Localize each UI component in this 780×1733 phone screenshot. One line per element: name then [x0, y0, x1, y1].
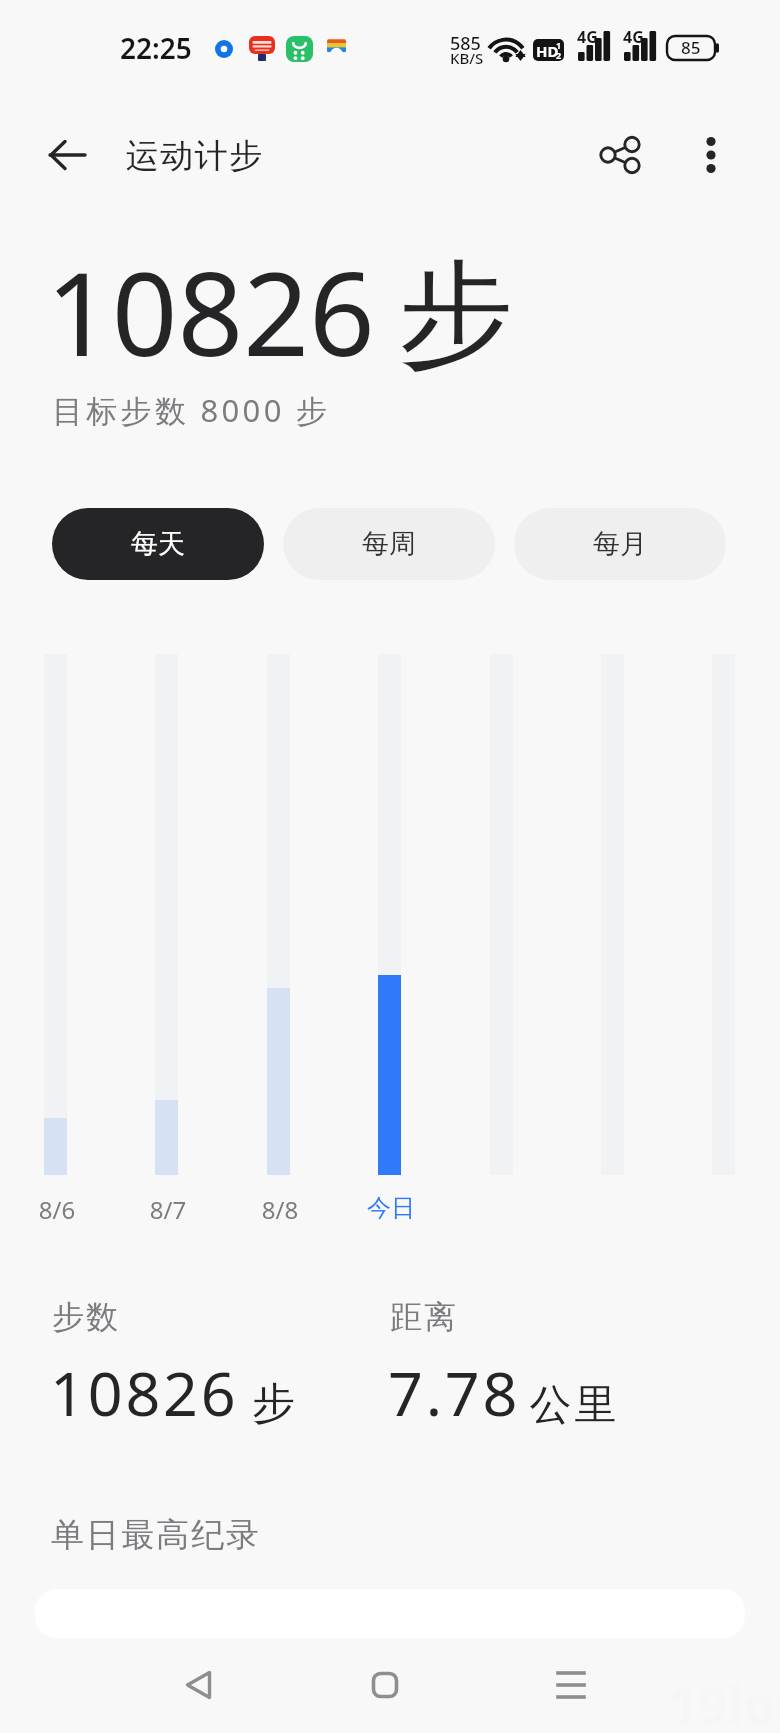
- staticText: 1: [556, 39, 562, 51]
- button[interactable]: Day column: [44, 654, 67, 1175]
- staticText: HD: [536, 41, 559, 61]
- staticText: 步: [398, 243, 513, 388]
- staticText: 目标步数 8000 步: [52, 389, 331, 431]
- button[interactable]: 每天: [52, 508, 264, 580]
- staticText: 8/6: [17, 1193, 97, 1226]
- staticText: 85: [681, 36, 701, 59]
- staticText: 4G: [577, 26, 598, 48]
- staticText: 步: [252, 1377, 295, 1431]
- button[interactable]: Back: [34, 127, 102, 195]
- button[interactable]: More options: [687, 127, 735, 175]
- button[interactable]: Home: [345, 1645, 425, 1725]
- button[interactable]: Recent apps: [531, 1645, 611, 1725]
- staticText: 10826: [46, 233, 375, 390]
- staticText: KB/S: [450, 48, 484, 68]
- button[interactable]: Day column: [155, 654, 178, 1175]
- staticText: 8/8: [240, 1193, 320, 1226]
- staticText: 每周: [362, 527, 416, 561]
- staticText: 每天: [131, 527, 185, 561]
- staticText: 运动计步: [125, 135, 263, 177]
- button[interactable]: Back: [158, 1645, 238, 1725]
- button[interactable]: 每周: [283, 508, 495, 580]
- staticText: 单日最高纪录: [50, 1514, 260, 1556]
- button[interactable]: Share: [580, 127, 652, 199]
- staticText: 585: [450, 31, 481, 56]
- staticText: 每月: [593, 527, 647, 561]
- staticText: 距离: [389, 1297, 457, 1337]
- staticText: 8/7: [128, 1193, 208, 1226]
- staticText: 10826: [50, 1351, 239, 1434]
- staticText: 2: [556, 49, 562, 61]
- staticText: 7.78: [388, 1351, 521, 1434]
- staticText: 步数: [51, 1297, 119, 1337]
- button[interactable]: 每月: [514, 508, 726, 580]
- staticText: 4G: [623, 26, 644, 48]
- staticText: 公里: [528, 1379, 618, 1432]
- button[interactable]: Day column: [267, 654, 290, 1175]
- button[interactable]: Day column: [378, 654, 401, 1175]
- staticText: 22:25: [120, 29, 192, 67]
- staticText: 今日: [351, 1193, 431, 1223]
